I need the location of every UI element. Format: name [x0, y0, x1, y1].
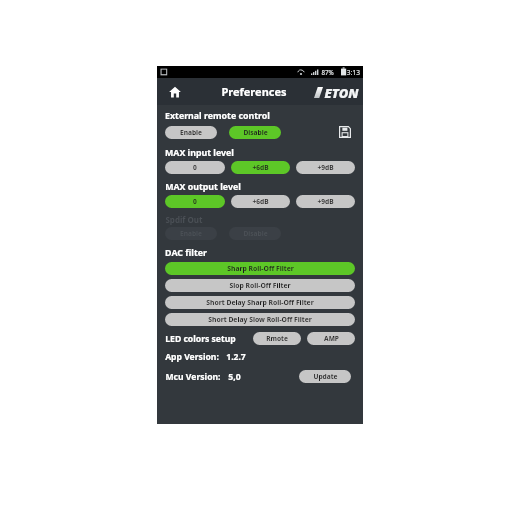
- button[interactable]: Save: [337, 124, 353, 140]
- button[interactable]: Short Delay Sharp Roll-Off Filter: [165, 296, 355, 309]
- button[interactable]: Home: [165, 82, 185, 102]
- staticText: +6dB: [252, 197, 269, 206]
- staticText: 13:13: [343, 68, 360, 77]
- staticText: AMP: [324, 334, 339, 343]
- button[interactable]: Slop Roll-Off Filter: [165, 279, 355, 292]
- staticText: LED colors setup: [165, 333, 236, 345]
- button[interactable]: Short Delay Slow Roll-Off Filter: [165, 313, 355, 326]
- staticText: Enable: [180, 229, 202, 238]
- button[interactable]: 0: [165, 161, 225, 174]
- button[interactable]: +6dB: [231, 195, 290, 208]
- staticText: Slop Roll-Off Filter: [229, 281, 291, 290]
- button[interactable]: Update: [299, 370, 351, 383]
- staticText: Short Delay Slow Roll-Off Filter: [208, 315, 312, 324]
- staticText: Mcu Version:: [165, 371, 221, 383]
- staticText: MAX output level: [165, 181, 241, 193]
- staticText: +6dB: [252, 163, 269, 172]
- button[interactable]: AMP: [307, 332, 355, 345]
- button[interactable]: +9dB: [296, 195, 355, 208]
- button[interactable]: Rmote: [253, 332, 301, 345]
- staticText: +9dB: [317, 163, 334, 172]
- staticText: 1.2.7: [226, 351, 246, 363]
- button[interactable]: +9dB: [296, 161, 355, 174]
- button[interactable]: Disable: [229, 227, 281, 240]
- staticText: ETON: [324, 84, 359, 100]
- staticText: MAX input level: [165, 147, 234, 159]
- staticText: +9dB: [317, 197, 334, 206]
- button[interactable]: 0: [165, 195, 225, 208]
- staticText: Rmote: [266, 334, 288, 343]
- staticText: Spdif Out: [165, 214, 203, 225]
- staticText: Preferences: [221, 84, 287, 99]
- staticText: 87%: [321, 68, 334, 76]
- staticText: Enable: [180, 128, 202, 137]
- button[interactable]: Enable: [165, 126, 217, 139]
- staticText: App Version:: [165, 351, 219, 363]
- button[interactable]: Enable: [165, 227, 217, 240]
- staticText: External remote control: [165, 110, 270, 122]
- staticText: 0: [193, 163, 197, 172]
- staticText: Disable: [243, 128, 268, 137]
- staticText: Disable: [243, 229, 268, 238]
- staticText: DAC filter: [165, 247, 207, 259]
- staticText: 0: [193, 197, 197, 206]
- button[interactable]: Sharp Roll-Off Filter: [165, 262, 355, 275]
- button[interactable]: Disable: [229, 126, 281, 139]
- staticText: Sharp Roll-Off Filter: [227, 264, 294, 273]
- staticText: Short Delay Sharp Roll-Off Filter: [206, 298, 314, 307]
- button[interactable]: +6dB: [231, 161, 290, 174]
- staticText: 5,0: [228, 371, 241, 383]
- staticText: Update: [313, 372, 338, 381]
